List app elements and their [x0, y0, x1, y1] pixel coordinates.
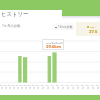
staticText: 5/1	[66, 84, 70, 87]
staticText: 29.6km	[46, 44, 62, 50]
staticText: 5/1	[32, 84, 36, 87]
staticText: 月	[25, 87, 28, 90]
staticText: 月	[57, 87, 60, 90]
staticText: 月	[82, 87, 85, 90]
staticText: 5/1	[56, 84, 60, 87]
staticText: 5/1	[20, 84, 24, 87]
staticText: 5/1	[81, 84, 85, 87]
staticText: 5/1	[41, 84, 45, 87]
staticText: 月	[13, 87, 16, 90]
staticText: 月	[47, 87, 50, 90]
staticText: 27.5	[89, 29, 98, 35]
staticText: 月	[62, 87, 65, 90]
staticText: 月	[67, 87, 70, 90]
staticText: 5/1	[8, 84, 12, 87]
staticText: 5/1	[86, 84, 90, 87]
staticText: 5/1	[51, 84, 55, 87]
staticText: 月	[21, 87, 24, 90]
staticText: 月	[97, 87, 100, 90]
staticText: 月	[9, 87, 12, 90]
staticText: 1か月の歩数	[2, 23, 21, 28]
staticText: 5/1	[61, 84, 65, 87]
staticText: 5/1	[0, 84, 4, 87]
staticText: 5/1	[91, 84, 95, 87]
staticText: 5/1	[76, 84, 80, 87]
staticText: 月	[87, 87, 90, 90]
staticText: 月	[42, 87, 45, 90]
staticText: 5/1	[96, 84, 100, 87]
button[interactable]: 2023年5月20日	[42, 39, 64, 50]
staticText: 5/1	[36, 84, 40, 87]
button[interactable]: 1日の歩数	[52, 23, 75, 30]
staticText: AVG	[90, 25, 95, 28]
staticText: 月	[17, 87, 20, 90]
staticText: 5/1	[12, 84, 16, 87]
staticText: 5/1	[24, 84, 28, 87]
staticText: 月	[5, 87, 8, 90]
staticText: 5/1	[4, 84, 8, 87]
staticText: 1日の歩数	[58, 25, 73, 29]
staticText: 月	[77, 87, 80, 90]
staticText: 5/1	[71, 84, 75, 87]
staticText: 月	[29, 87, 32, 90]
staticText: 2023年5月20日	[46, 41, 63, 44]
staticText: 月	[1, 87, 4, 90]
staticText: 月	[92, 87, 95, 90]
staticText: 月	[37, 87, 40, 90]
staticText: 月	[33, 87, 36, 90]
staticText: 月	[72, 87, 75, 90]
staticText: 月	[52, 87, 55, 90]
staticText: 5/1	[28, 84, 32, 87]
staticText: 5/1	[16, 84, 20, 87]
staticText: ヒストリー	[1, 11, 29, 18]
staticText: 5/1	[46, 84, 50, 87]
